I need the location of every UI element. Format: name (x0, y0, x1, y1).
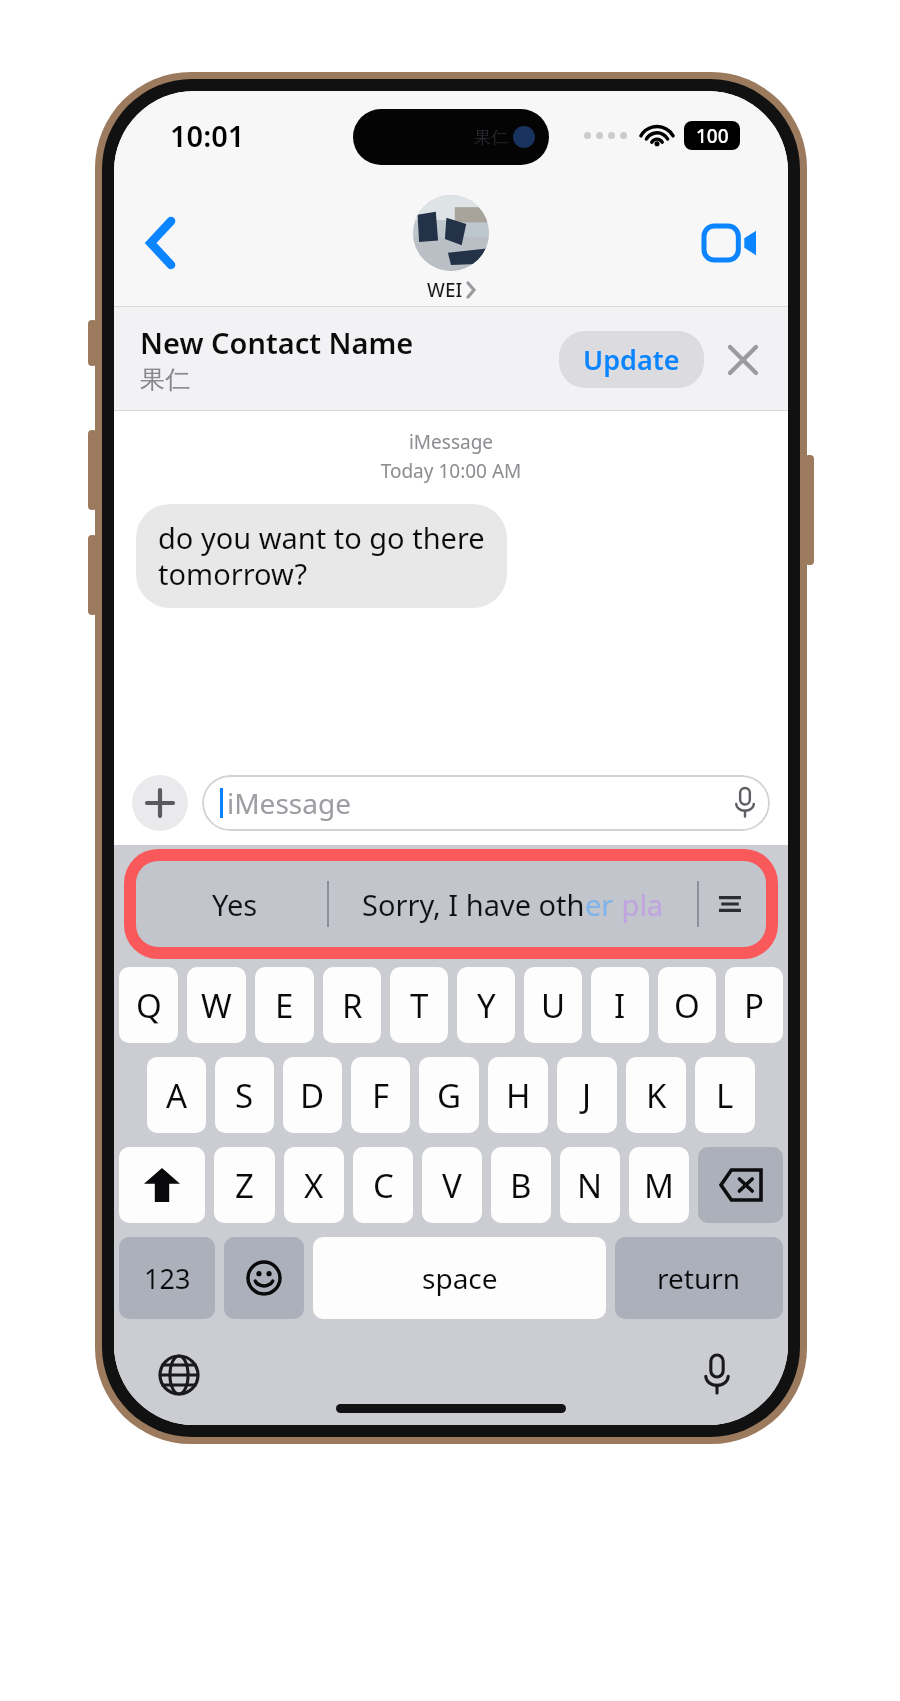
button[interactable]: Change keyboard (148, 1344, 210, 1406)
staticText: N (577, 1163, 603, 1208)
staticText: X (304, 1163, 324, 1208)
staticText: W (201, 983, 232, 1028)
staticText: New Contact Name (140, 323, 414, 362)
staticText: 10:01 (170, 116, 245, 155)
staticText: 123 (144, 1260, 191, 1297)
button[interactable]: W (187, 967, 246, 1043)
button[interactable]: E (255, 967, 314, 1043)
staticText: F (372, 1073, 390, 1118)
button[interactable]: M (629, 1147, 689, 1223)
button[interactable]: Back (130, 211, 194, 275)
button[interactable]: N (560, 1147, 620, 1223)
staticText: iMessage (114, 429, 788, 455)
button[interactable]: U (524, 967, 582, 1043)
staticText: B (510, 1163, 532, 1208)
staticText: T (410, 983, 429, 1028)
button[interactable]: Backspace (698, 1147, 783, 1223)
staticText: K (646, 1073, 667, 1118)
button[interactable]: WEI (413, 195, 489, 303)
staticText: P (744, 983, 764, 1028)
button[interactable]: Shift (119, 1147, 205, 1223)
button[interactable]: Add attachment (132, 775, 188, 831)
staticText: iMessage (227, 784, 734, 822)
staticText: Y (477, 983, 496, 1028)
staticText: Yes (212, 885, 258, 924)
staticText: L (716, 1073, 734, 1118)
staticText: 果仁 (140, 364, 190, 395)
button[interactable]: 123 (119, 1237, 215, 1319)
button[interactable]: Dismiss (718, 335, 768, 385)
button[interactable]: B (491, 1147, 551, 1223)
staticText: pla (614, 885, 664, 924)
button[interactable]: iMessage (202, 775, 770, 831)
staticText: space (422, 1259, 498, 1297)
staticText: U (541, 983, 566, 1028)
staticText: D (300, 1073, 325, 1118)
button[interactable]: Update (559, 331, 704, 388)
button[interactable]: I (591, 967, 649, 1043)
button[interactable]: space (313, 1237, 606, 1319)
staticText: Today 10:00 AM (114, 458, 788, 484)
staticText: V (442, 1163, 462, 1208)
staticText: 果仁 (474, 127, 508, 148)
button[interactable]: C (353, 1147, 413, 1223)
button[interactable]: P (725, 967, 783, 1043)
staticText: Sorry, I have oth (362, 885, 585, 924)
staticText: A (166, 1073, 188, 1118)
staticText: J (582, 1073, 592, 1118)
staticText: do you want to go there tomorrow? (158, 518, 485, 594)
button[interactable]: D (283, 1057, 342, 1133)
button[interactable]: V (422, 1147, 482, 1223)
staticText: O (674, 983, 700, 1028)
button[interactable]: Emoji (224, 1237, 304, 1319)
staticText: C (373, 1163, 394, 1208)
button[interactable]: Y (457, 967, 515, 1043)
button[interactable]: FaceTime video call (698, 211, 762, 275)
button[interactable]: X (284, 1147, 344, 1223)
staticText: H (506, 1073, 531, 1118)
button[interactable]: S (215, 1057, 274, 1133)
staticText: S (235, 1073, 254, 1118)
staticText: return (657, 1259, 741, 1297)
staticText: M (644, 1163, 674, 1208)
button[interactable]: G (419, 1057, 479, 1133)
staticText: E (275, 983, 294, 1028)
staticText: G (437, 1073, 462, 1118)
button[interactable]: H (488, 1057, 548, 1133)
staticText: Update (583, 341, 680, 378)
staticText: WEI (427, 277, 463, 303)
button[interactable]: O (658, 967, 716, 1043)
staticText: er (585, 885, 614, 924)
button[interactable]: Dictation (686, 1344, 748, 1406)
staticText: Z (235, 1163, 254, 1208)
button[interactable]: Yes (136, 861, 766, 947)
button[interactable]: J (557, 1057, 617, 1133)
button[interactable]: L (695, 1057, 755, 1133)
staticText: I (614, 983, 626, 1028)
staticText: Q (136, 983, 162, 1028)
button[interactable]: K (626, 1057, 686, 1133)
button[interactable]: A (147, 1057, 206, 1133)
staticText: R (342, 983, 363, 1028)
button[interactable]: T (390, 967, 448, 1043)
button[interactable]: Q (119, 967, 178, 1043)
button[interactable]: F (351, 1057, 410, 1133)
button[interactable]: return (615, 1237, 783, 1319)
staticText: 100 (696, 123, 729, 149)
button[interactable]: Z (214, 1147, 275, 1223)
button[interactable]: do you want to go there tomorrow? (136, 504, 507, 608)
button[interactable]: R (323, 967, 381, 1043)
